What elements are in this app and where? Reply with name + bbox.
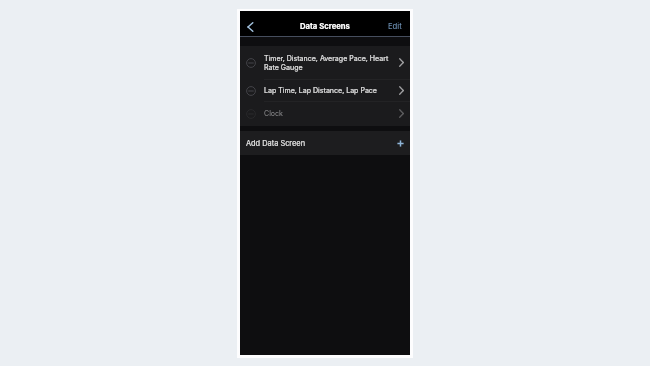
button[interactable]: Back (242, 19, 258, 35)
staticText: Data Screens (300, 22, 350, 31)
button[interactable]: Edit (388, 22, 402, 31)
staticText: Edit (388, 22, 402, 31)
button[interactable]: Add Data Screen (240, 131, 410, 155)
staticText: Add Data Screen (246, 139, 306, 148)
button[interactable]: Clock (240, 102, 410, 125)
staticText: Lap Time, Lap Distance, Lap Pace (264, 86, 395, 95)
staticText: Clock (264, 109, 395, 118)
button[interactable]: Timer, Distance, Average Pace, Heart Rat… (240, 46, 410, 79)
staticText: Timer, Distance, Average Pace, Heart Rat… (264, 54, 395, 72)
button[interactable]: Lap Time, Lap Distance, Lap Pace (240, 80, 410, 101)
